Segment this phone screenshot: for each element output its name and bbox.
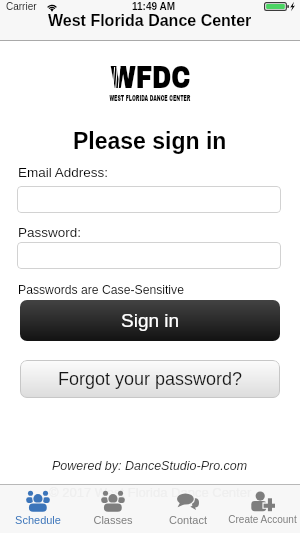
staticText: Email Address:	[18, 165, 109, 180]
button[interactable]: Create Account	[225, 485, 300, 533]
staticText: West Florida Dance Center	[48, 12, 252, 30]
button[interactable]: Classes	[75, 485, 150, 533]
button[interactable]: Text field	[17, 186, 281, 213]
staticText: 11:49 AM	[132, 1, 175, 12]
staticText: Create Account	[228, 514, 297, 525]
button[interactable]: Sign in	[20, 300, 280, 341]
staticText: Please sign in	[73, 128, 227, 154]
button[interactable]: Forgot your password?	[20, 360, 280, 398]
staticText: Password:	[18, 225, 82, 240]
staticText: Contact	[169, 514, 207, 526]
staticText: Powered by: DanceStudio-Pro.com	[52, 459, 248, 473]
button[interactable]: Text field	[17, 242, 281, 269]
staticText: Passwords are Case-Sensitive	[18, 283, 184, 297]
staticText: WFDC	[111, 60, 190, 95]
other: Wi-Fi	[47, 3, 57, 11]
staticText: Forgot your password?	[58, 369, 243, 389]
other: Battery charging	[264, 2, 295, 11]
staticText: Carrier	[6, 1, 37, 12]
staticText: © 2017 West Florida Dance Center	[49, 485, 252, 500]
staticText: Sign in	[121, 310, 180, 331]
staticText: Classes	[93, 514, 133, 526]
staticText: WEST FLORIDA DANCE CENTER	[109, 94, 190, 103]
button[interactable]: Contact	[150, 485, 225, 533]
staticText: Schedule	[15, 514, 61, 526]
button[interactable]: Schedule	[0, 485, 75, 533]
